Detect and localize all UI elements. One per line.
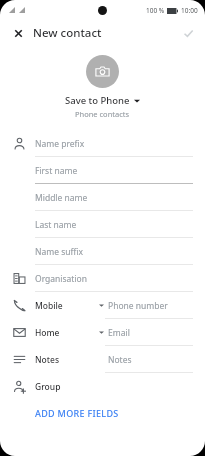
button[interactable]: Close <box>9 24 27 42</box>
button[interactable]: Save <box>179 24 197 42</box>
staticText: Email <box>108 327 130 339</box>
button[interactable]: Group <box>0 373 205 400</box>
staticText: Phone number <box>108 300 168 312</box>
staticText: 10:00 <box>181 6 198 15</box>
button[interactable]: Name suffix <box>0 238 205 265</box>
button[interactable]: Name prefix <box>0 130 205 157</box>
staticText: Last name <box>35 219 77 231</box>
button[interactable]: Notes <box>0 346 205 373</box>
staticText: First name <box>35 165 78 177</box>
staticText: Name prefix <box>35 138 85 150</box>
staticText: Home <box>35 327 60 339</box>
staticText: 100 % <box>146 6 165 15</box>
button[interactable]: Save to Phone <box>65 94 140 107</box>
staticText: New contact <box>33 25 102 41</box>
staticText: Notes <box>108 354 132 366</box>
staticText: Organisation <box>35 273 88 285</box>
button[interactable]: Mobile <box>0 292 205 319</box>
button[interactable]: Last name <box>0 211 205 238</box>
staticText: Notes <box>35 354 60 366</box>
button[interactable]: Organisation <box>0 265 205 292</box>
button[interactable]: ADD MORE FIELDS <box>30 404 124 422</box>
staticText: Phone contacts <box>75 109 130 119</box>
button[interactable]: First name <box>0 157 205 184</box>
staticText: Mobile <box>35 300 63 312</box>
staticText: Middle name <box>35 192 88 204</box>
staticText: ADD MORE FIELDS <box>35 407 119 419</box>
button[interactable]: Middle name <box>0 184 205 211</box>
button[interactable]: Add photo <box>86 55 119 88</box>
staticText: Name suffix <box>35 246 84 258</box>
staticText: Save to Phone <box>65 94 130 107</box>
button[interactable]: Home <box>0 319 205 346</box>
staticText: Group <box>35 381 61 393</box>
